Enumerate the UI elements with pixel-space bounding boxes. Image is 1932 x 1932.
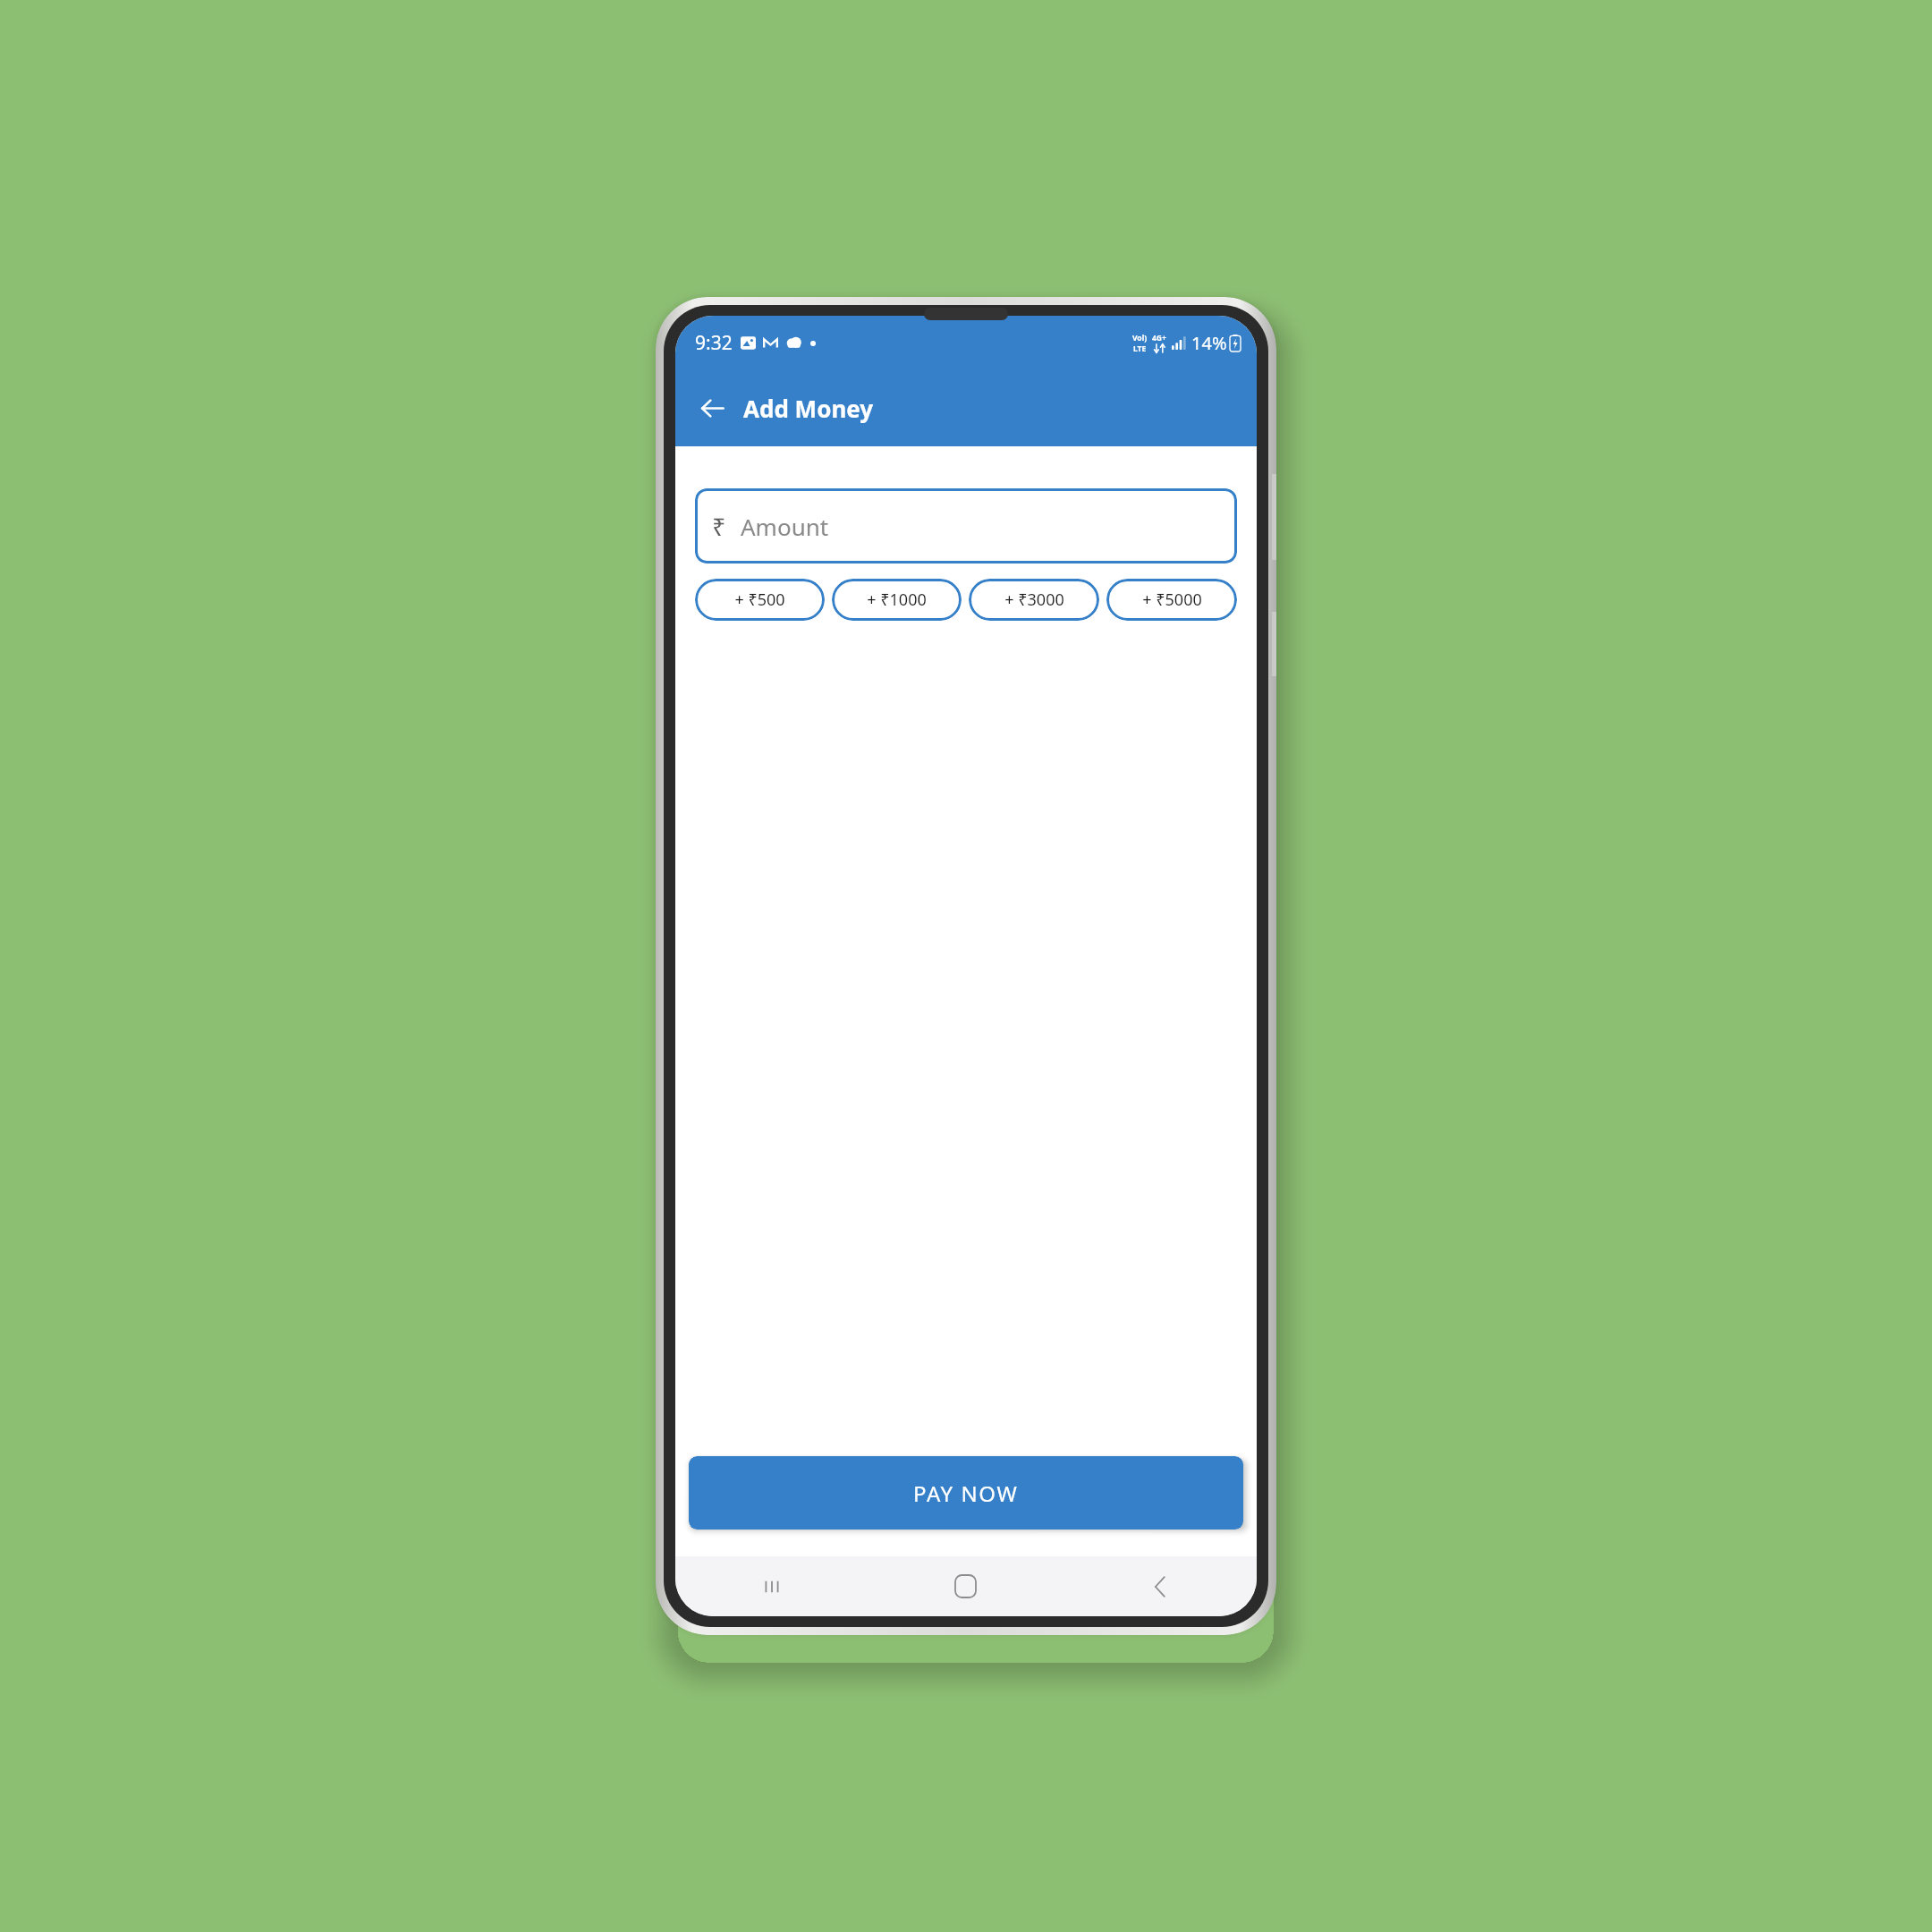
staticText: 14% — [1191, 331, 1227, 355]
staticText: PAY NOW — [913, 1479, 1019, 1508]
staticText: Amount — [741, 511, 829, 542]
button[interactable]: Home — [869, 1556, 1063, 1616]
staticText: + ₹5000 — [1142, 589, 1202, 611]
button[interactable]: + ₹5000 — [1106, 579, 1237, 621]
button[interactable]: + ₹1000 — [832, 579, 962, 621]
button[interactable]: + ₹500 — [695, 579, 825, 621]
button[interactable]: + ₹3000 — [969, 579, 1099, 621]
staticText: + ₹500 — [734, 589, 785, 611]
staticText: Vol) — [1132, 333, 1148, 343]
staticText: LTE — [1133, 343, 1147, 354]
button[interactable]: Back — [691, 387, 733, 428]
button[interactable]: Back — [1063, 1556, 1257, 1616]
staticText: 4G+ — [1152, 333, 1166, 343]
staticText: + ₹1000 — [867, 589, 927, 611]
staticText: + ₹3000 — [1004, 589, 1064, 611]
staticText: 9:32 — [695, 330, 733, 356]
button[interactable]: ₹ — [695, 488, 1237, 563]
button[interactable]: PAY NOW — [689, 1456, 1243, 1529]
button[interactable]: Recent apps — [675, 1556, 869, 1616]
staticText: ₹ — [712, 510, 726, 543]
staticText: Add Money — [743, 393, 874, 424]
